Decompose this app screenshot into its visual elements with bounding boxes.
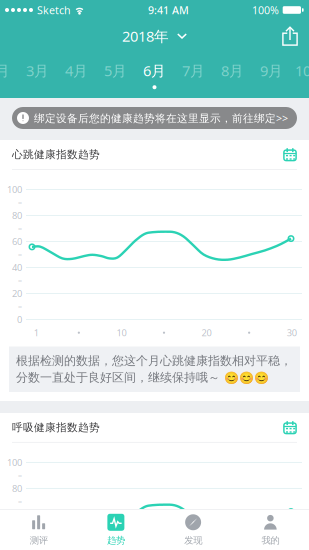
staticText: – [18,275,22,286]
staticText: 40 [12,261,22,274]
staticText: 9:41 AM [148,3,189,17]
staticText: 心跳健康指数趋势 [12,148,100,161]
button[interactable]: 5月 [96,61,135,89]
button[interactable]: 2018年 [110,20,199,52]
button[interactable]: 8月 [213,61,252,89]
button[interactable]: Pick date [279,143,301,165]
button[interactable]: 绑定设备后您的健康趋势将在这里显示，前往绑定>> [12,107,297,129]
button[interactable]: 2月 [0,61,18,89]
staticText: 发现 [184,535,202,546]
staticText: 2月 [0,61,10,80]
button[interactable]: Pick date [279,416,301,438]
staticText: 8月 [221,61,244,80]
button[interactable]: 我的 [232,509,309,550]
staticText: – [18,197,22,208]
button[interactable]: 发现 [154,509,232,550]
staticText: 5月 [104,61,127,80]
staticText: 1 [34,326,39,339]
staticText: – [18,249,22,260]
staticText: 7月 [182,61,205,80]
staticText: – [18,223,22,234]
staticText: 100 [7,456,22,469]
staticText: 30 [287,326,297,339]
staticText: 3月 [26,61,49,80]
button[interactable]: Share [271,23,309,49]
staticText: 60 [12,508,22,521]
staticText: 6月 [143,61,166,80]
staticText: 2018年 [122,26,169,46]
staticText: 趋势 [107,535,125,546]
staticText: 测评 [30,535,48,546]
button[interactable]: 9月 [252,61,291,89]
button[interactable]: 7月 [174,61,213,89]
staticText: 60 [12,235,22,248]
staticText: 绑定设备后您的健康趋势将在这里显示，前往绑定>> [34,111,288,125]
button[interactable]: 3月 [18,61,57,89]
staticText: 我的 [261,535,279,546]
staticText: 0 [17,313,22,326]
staticText: 10 [116,326,126,339]
staticText: 20 [12,287,22,300]
button[interactable]: 测评 [0,509,77,550]
staticText: Sketch [37,3,71,17]
staticText: 80 [12,482,22,495]
button[interactable]: 4月 [57,61,96,89]
staticText: – [18,470,22,481]
staticText: 20 [202,326,212,339]
staticText: 呼吸健康指数趋势 [12,421,100,434]
button[interactable]: 10月 [291,61,309,89]
staticText: 根据检测的数据，您这个月心跳健康指数相对平稳， 分数一直处于良好区间，继续保持哦… [16,353,292,385]
staticText: 80 [12,209,22,222]
button[interactable]: 趋势 [77,509,154,550]
staticText: 9月 [260,61,283,80]
staticText: – [18,301,22,312]
staticText: 4月 [65,61,88,80]
staticText: 10月 [295,61,309,80]
staticText: 100 [7,183,22,196]
staticText: 100% [252,3,279,17]
button[interactable]: 6月 [135,61,174,89]
staticText: – [18,496,22,507]
